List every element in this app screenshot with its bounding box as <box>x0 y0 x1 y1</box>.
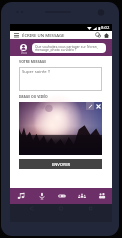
staticText: VOTRE MESSAGE <box>19 59 47 64</box>
button[interactable]: Super soirée !! <box>19 67 102 91</box>
button[interactable]: Edit image <box>86 102 94 110</box>
button[interactable]: Community <box>72 188 92 204</box>
staticText: IMAGE OU VIDÉO <box>19 94 48 99</box>
staticText: Super soirée !! <box>22 69 50 75</box>
button[interactable]: Home <box>102 31 110 39</box>
button[interactable]: Remove image <box>94 102 102 110</box>
staticText: ENVOYER <box>52 162 70 167</box>
staticText: Vous <box>21 51 27 55</box>
staticText: ÉCRIRE UN MESSAGE <box>22 32 65 38</box>
button[interactable]: ENVOYER <box>19 159 102 169</box>
staticText: Que souhaitez-vous partager sur l'écran,… <box>35 44 98 52</box>
button[interactable]: Menu <box>13 31 20 39</box>
button[interactable]: Friends <box>92 188 112 204</box>
staticText: 8:02 <box>101 25 110 31</box>
button[interactable]: Messages <box>94 31 102 39</box>
button[interactable]: Games <box>52 188 72 204</box>
button[interactable]: Music <box>10 188 31 204</box>
button[interactable]: Voice <box>31 188 52 204</box>
